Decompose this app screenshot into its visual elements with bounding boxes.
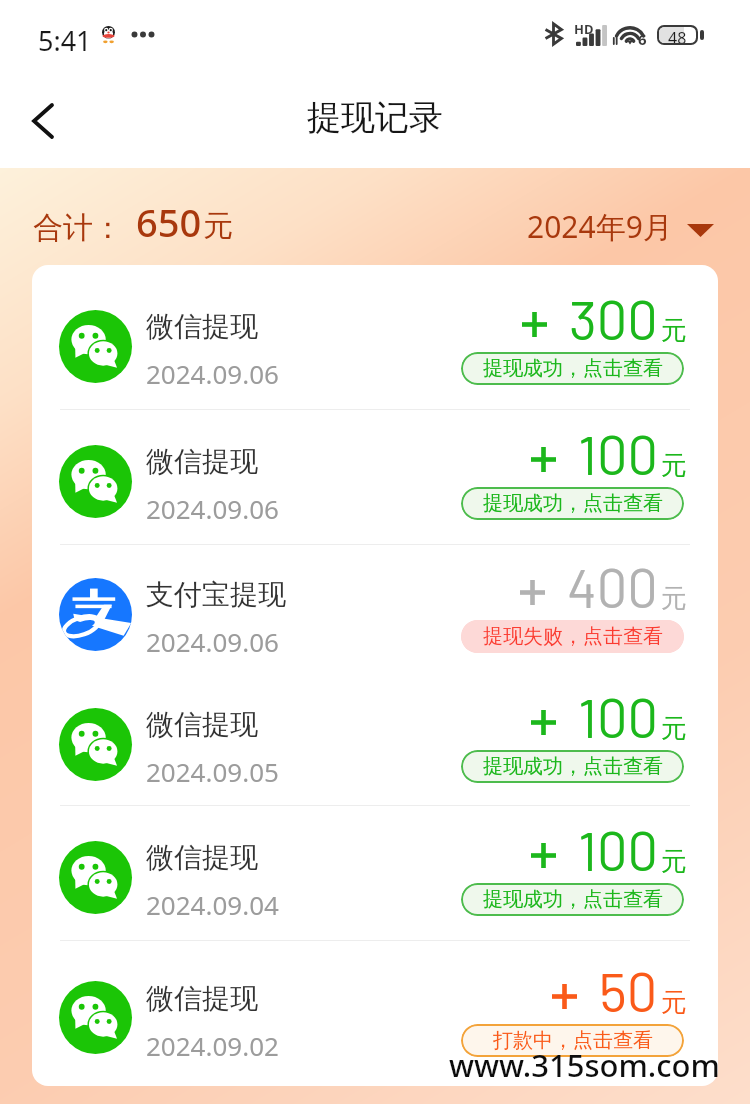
staticText: 300 bbox=[569, 286, 658, 351]
button[interactable]: 提现成功，点击查看 bbox=[461, 487, 684, 520]
staticText: 元 bbox=[203, 207, 233, 245]
staticText: 微信提现 bbox=[146, 444, 258, 479]
staticText: 元 bbox=[661, 582, 687, 615]
staticText: 2024年9月 bbox=[527, 206, 673, 247]
staticText: 提现记录 bbox=[307, 96, 443, 139]
button[interactable]: Back bbox=[11, 88, 77, 154]
staticText: HD bbox=[574, 20, 594, 38]
staticText: 微信提现 bbox=[146, 981, 258, 1016]
button[interactable]: 微信提现 bbox=[32, 941, 718, 1086]
button[interactable]: 微信提现 bbox=[32, 275, 718, 409]
button[interactable]: 微信提现 bbox=[32, 806, 718, 940]
staticText: 元 bbox=[661, 986, 687, 1019]
staticText: 提现成功，点击查看 bbox=[483, 887, 663, 912]
staticText: 提现成功，点击查看 bbox=[483, 754, 663, 779]
staticText: 5:41 bbox=[38, 22, 92, 59]
button[interactable]: 提现成功，点击查看 bbox=[461, 750, 684, 783]
staticText: 400 bbox=[567, 554, 658, 619]
staticText: 6 bbox=[638, 29, 647, 49]
button[interactable]: 支付宝提现 bbox=[32, 545, 718, 675]
staticText: 2024.09.06 bbox=[146, 356, 279, 391]
staticText: 微信提现 bbox=[146, 707, 258, 742]
staticText: 2024.09.04 bbox=[146, 887, 279, 922]
staticText: 100 bbox=[578, 421, 658, 486]
staticText: 100 bbox=[578, 684, 658, 749]
staticText: 100 bbox=[578, 817, 658, 882]
staticText: 2024.09.02 bbox=[146, 1028, 279, 1063]
staticText: 元 bbox=[661, 449, 687, 482]
staticText: 打款中，点击查看 bbox=[493, 1028, 653, 1053]
staticText: 合计： bbox=[33, 209, 123, 247]
button[interactable]: 2024年9月 bbox=[527, 196, 714, 237]
staticText: 支付宝提现 bbox=[146, 577, 286, 612]
staticText: 微信提现 bbox=[146, 840, 258, 875]
staticText: 元 bbox=[661, 314, 687, 347]
staticText: 微信提现 bbox=[146, 309, 258, 344]
staticText: 48 bbox=[668, 27, 687, 43]
staticText: 元 bbox=[661, 712, 687, 745]
button[interactable]: 打款中，点击查看 bbox=[461, 1024, 684, 1057]
staticText: www.315som.com bbox=[449, 1044, 720, 1086]
staticText: 2024.09.05 bbox=[146, 754, 279, 789]
staticText: 650 bbox=[136, 196, 202, 248]
staticText: 2024.09.06 bbox=[146, 491, 279, 526]
button[interactable]: 提现成功，点击查看 bbox=[461, 352, 684, 385]
staticText: 2024.09.06 bbox=[146, 624, 279, 659]
button[interactable]: 提现成功，点击查看 bbox=[461, 883, 684, 916]
button[interactable]: 微信提现 bbox=[32, 675, 718, 805]
button[interactable]: 提现失败，点击查看 bbox=[461, 620, 684, 653]
staticText: 50 bbox=[599, 958, 658, 1023]
button[interactable]: 微信提现 bbox=[32, 410, 718, 544]
staticText: 提现成功，点击查看 bbox=[483, 491, 663, 516]
staticText: 提现失败，点击查看 bbox=[483, 624, 663, 649]
staticText: 元 bbox=[661, 845, 687, 878]
staticText: 提现成功，点击查看 bbox=[483, 356, 663, 381]
